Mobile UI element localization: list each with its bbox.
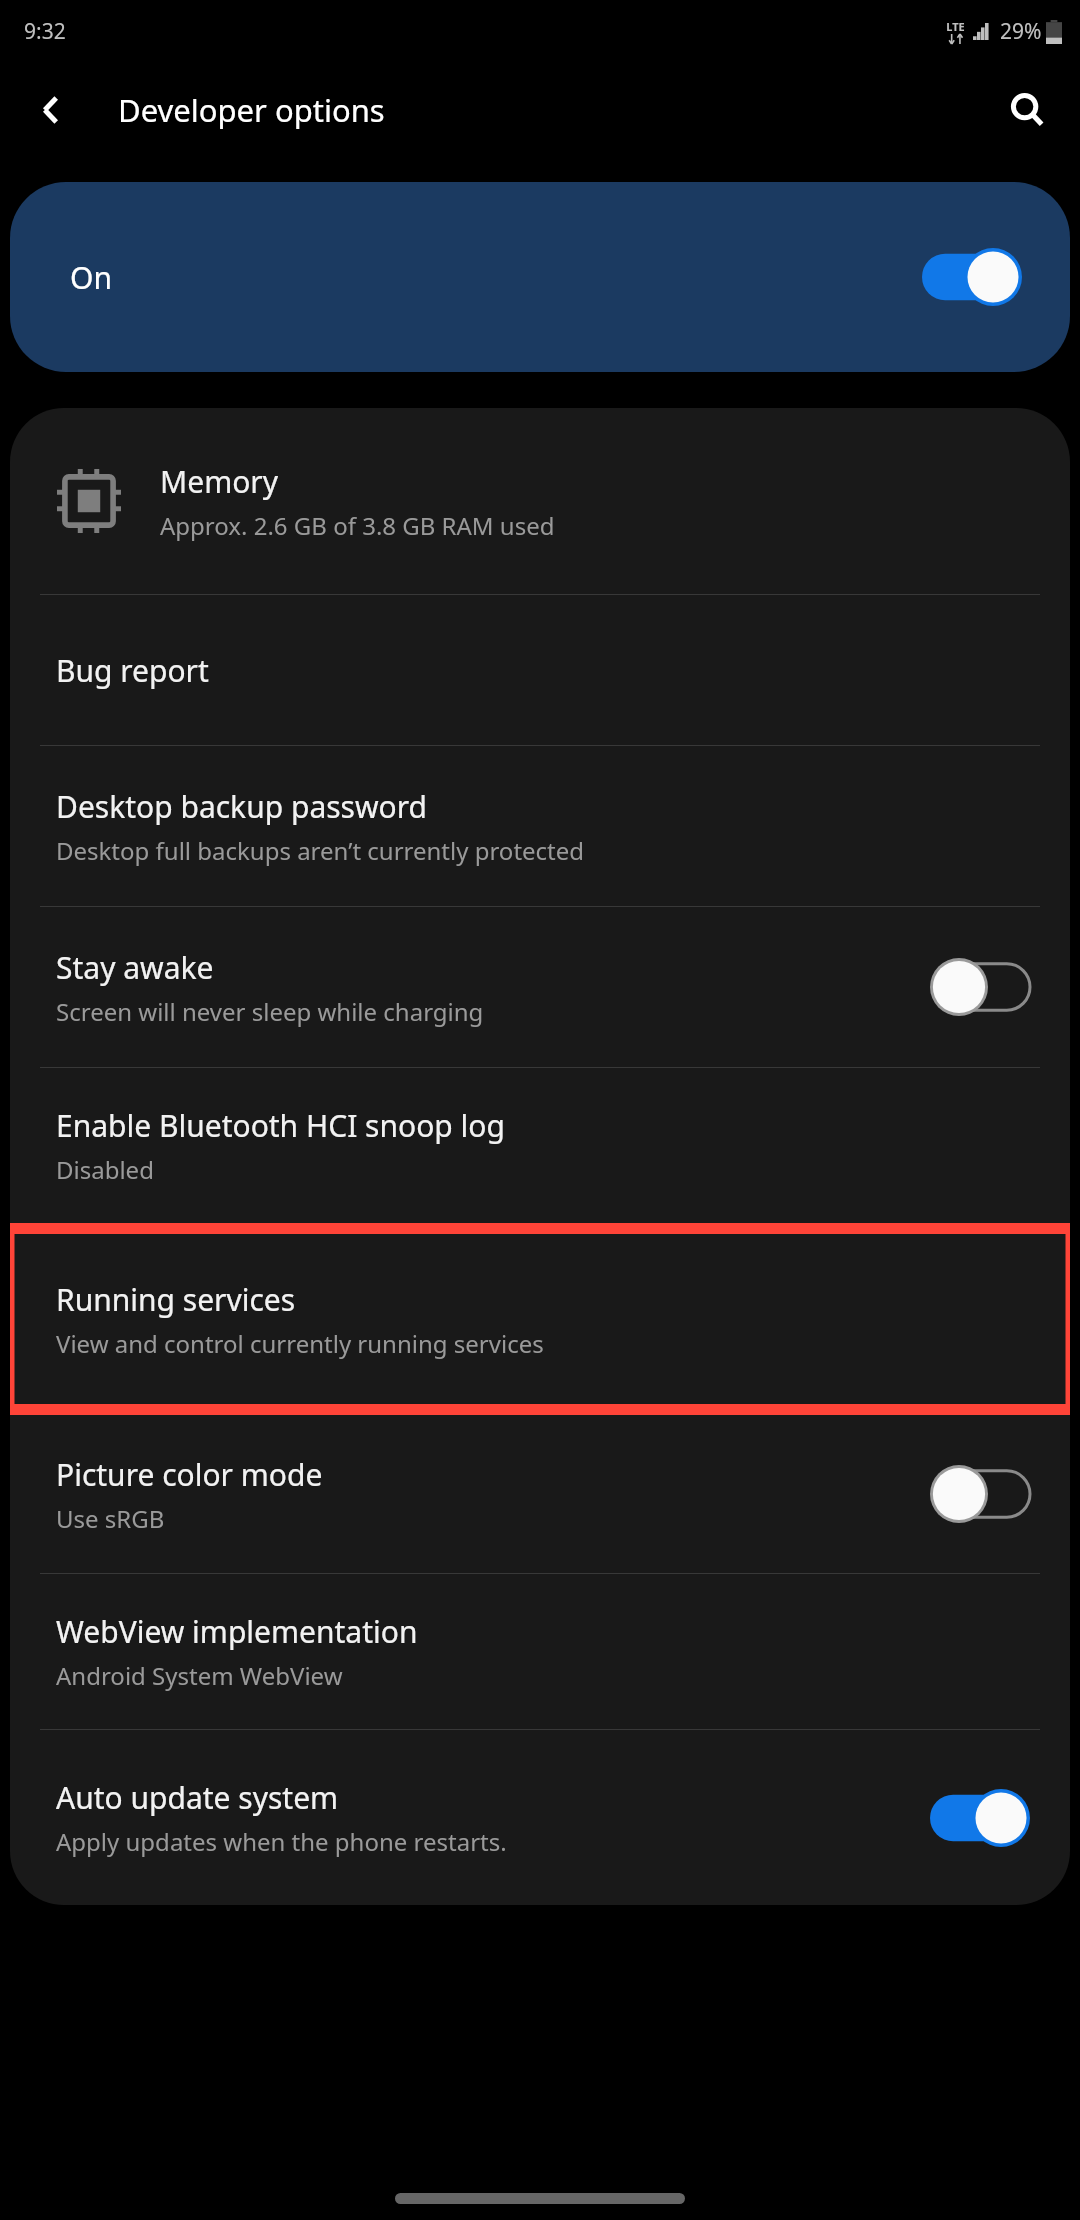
button[interactable]: Stay awake — [930, 958, 1030, 1016]
button[interactable]: Stay awake — [10, 907, 1070, 1067]
staticText: Disabled — [56, 1153, 154, 1186]
staticText: Enable Bluetooth HCI snoop log — [56, 1105, 505, 1146]
staticText: Picture color mode — [56, 1454, 323, 1495]
button[interactable]: On — [10, 182, 1070, 372]
staticText: WebView implementation — [56, 1611, 418, 1652]
button[interactable]: Desktop backup password — [10, 746, 1070, 906]
button[interactable]: Picture color mode — [10, 1415, 1070, 1573]
staticText: LTE — [946, 19, 965, 34]
staticText: Auto update system — [56, 1777, 339, 1818]
staticText: Use sRGB — [56, 1502, 165, 1535]
staticText: 29% — [1000, 17, 1042, 46]
button[interactable]: Bug report — [10, 595, 1070, 745]
staticText: On — [70, 257, 112, 298]
button[interactable]: Back — [24, 82, 80, 138]
button[interactable]: Picture color mode — [930, 1465, 1030, 1523]
button[interactable]: WebView implementation — [10, 1574, 1070, 1729]
staticText: Bug report — [56, 650, 209, 691]
button[interactable]: Auto update system — [930, 1789, 1030, 1847]
staticText: Android System WebView — [56, 1659, 343, 1692]
staticText: Memory — [160, 461, 279, 502]
staticText: View and control currently running servi… — [56, 1327, 544, 1360]
staticText: Screen will never sleep while charging — [56, 995, 484, 1028]
staticText: 9:32 — [24, 17, 66, 46]
staticText: Desktop backup password — [56, 786, 427, 827]
button[interactable]: Running services — [10, 1224, 1070, 1414]
button[interactable]: Search — [996, 79, 1058, 141]
button[interactable]: Auto update system — [10, 1730, 1070, 1905]
staticText: Approx. 2.6 GB of 3.8 GB RAM used — [160, 509, 555, 542]
staticText: Stay awake — [56, 947, 214, 988]
staticText: Running services — [56, 1279, 296, 1320]
staticText: Apply updates when the phone restarts. — [56, 1825, 507, 1858]
staticText: Desktop full backups aren’t currently pr… — [56, 834, 585, 867]
staticText: Developer options — [118, 89, 385, 131]
button[interactable]: Enable Bluetooth HCI snoop log — [10, 1068, 1070, 1223]
button[interactable]: Memory — [10, 408, 1070, 594]
